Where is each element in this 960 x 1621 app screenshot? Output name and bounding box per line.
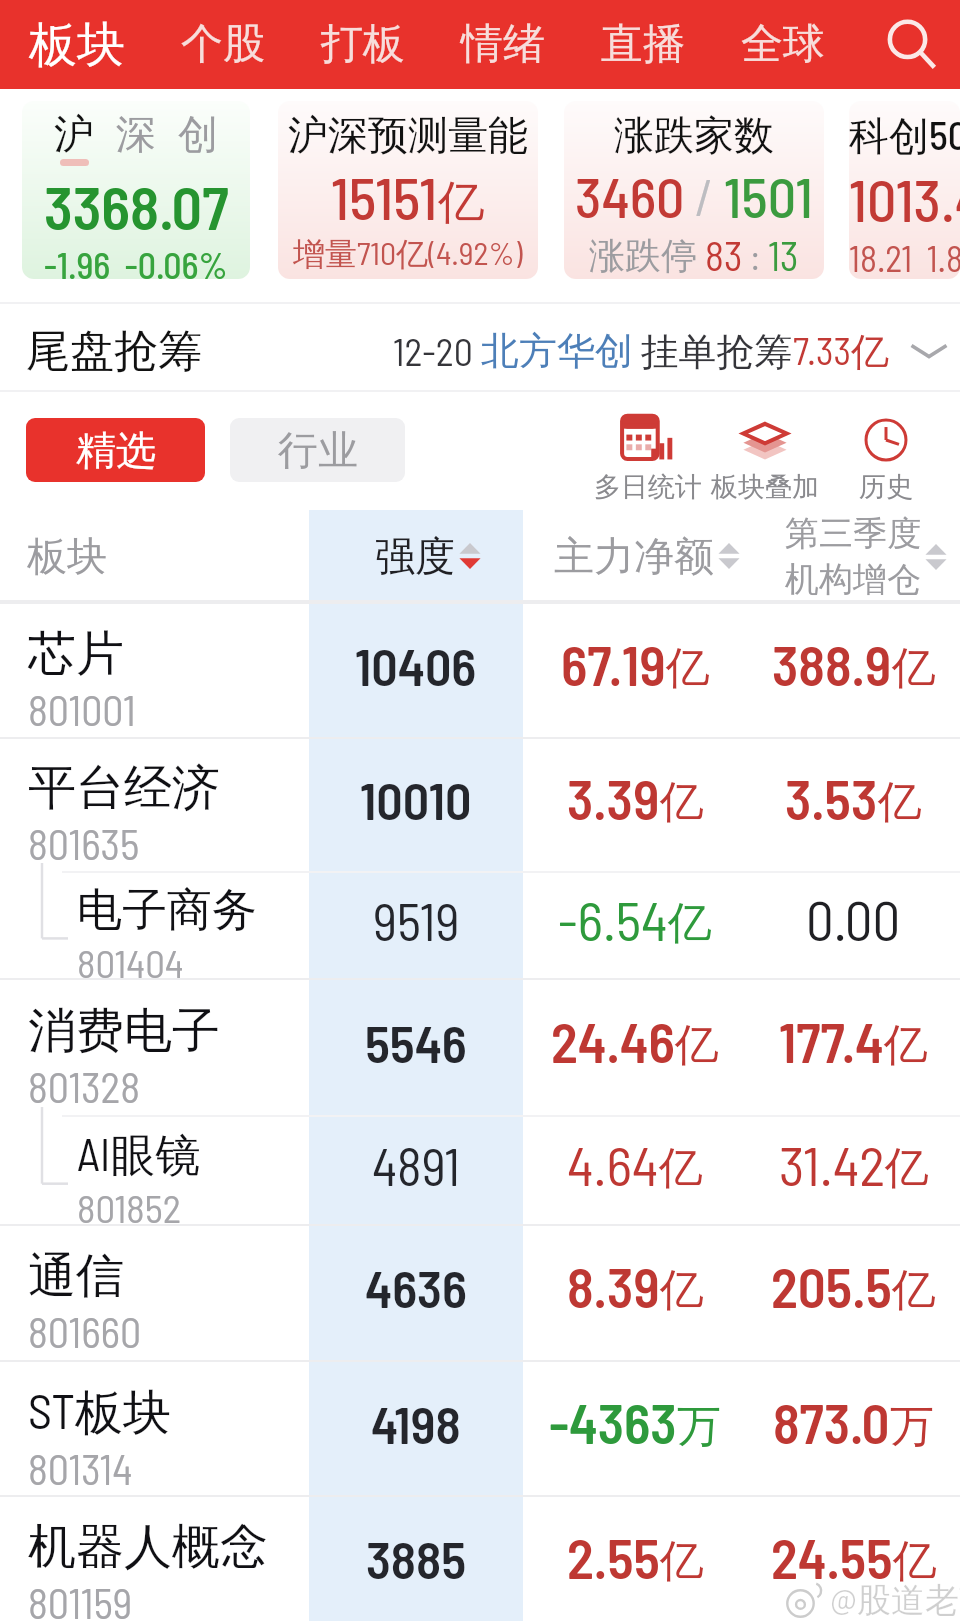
- button[interactable]: 芯片: [0, 602, 960, 737]
- button[interactable]: 板块叠加: [705, 413, 825, 504]
- staticText: 挂单抢筹: [633, 327, 793, 376]
- staticText: @股道老苏: [830, 1578, 960, 1621]
- button[interactable]: 沪: [22, 101, 250, 279]
- staticText: 801635: [28, 818, 140, 868]
- staticText: 第三季度: [785, 512, 921, 555]
- staticText: 精选: [76, 425, 156, 475]
- staticText: 沪: [54, 109, 94, 159]
- staticText: 亿: [893, 1534, 937, 1589]
- button[interactable]: 尾盘抢筹: [0, 308, 960, 394]
- staticText: 创: [178, 109, 218, 159]
- staticText: 亿: [892, 641, 936, 696]
- button[interactable]: 通信: [0, 1224, 960, 1360]
- staticText: 增量710亿(4.92%): [293, 233, 523, 275]
- staticText: 873.0: [773, 1389, 890, 1455]
- button[interactable]: 主力净额: [523, 510, 747, 602]
- staticText: 10406: [355, 634, 477, 696]
- button[interactable]: Expand: [906, 328, 952, 374]
- staticText: 177.4: [779, 1008, 884, 1074]
- staticText: 亿: [878, 775, 922, 830]
- staticText: 全球: [741, 18, 825, 71]
- staticText: 801852: [77, 1184, 182, 1231]
- staticText: 主力净额: [554, 531, 714, 581]
- button[interactable]: 历史: [826, 413, 946, 504]
- staticText: 亿: [666, 641, 710, 696]
- staticText: 5546: [365, 1011, 467, 1073]
- staticText: 平台经济: [28, 758, 220, 818]
- staticText: 涨跌停: [589, 232, 705, 279]
- staticText: 万: [677, 1399, 721, 1454]
- button[interactable]: 全球: [713, 0, 853, 89]
- button[interactable]: 沪深预测量能: [278, 101, 538, 279]
- button[interactable]: 消费电子: [0, 978, 960, 1115]
- staticText: 消费电子: [28, 1001, 220, 1061]
- staticText: 83: [705, 231, 743, 279]
- button[interactable]: 机器人概念: [0, 1495, 960, 1621]
- button[interactable]: 行业: [230, 418, 405, 482]
- staticText: 3.39: [567, 765, 660, 831]
- staticText: 24.55: [771, 1524, 893, 1590]
- staticText: 深: [116, 109, 156, 159]
- staticText: 12-20: [393, 328, 481, 374]
- button[interactable]: 板块: [0, 0, 153, 89]
- staticText: 机构增仓: [785, 558, 921, 601]
- staticText: 亿: [668, 896, 712, 951]
- staticText: 7.33亿: [793, 327, 890, 376]
- staticText: :: [743, 234, 768, 277]
- staticText: 13: [768, 231, 799, 279]
- staticText: 亿: [660, 1534, 704, 1589]
- staticText: 亿: [659, 1141, 703, 1196]
- button[interactable]: 涨跌家数: [564, 101, 824, 279]
- staticText: 1013.44: [849, 164, 960, 234]
- staticText: 板块叠加: [711, 470, 819, 504]
- button[interactable]: ST板块: [0, 1360, 960, 1495]
- staticText: 北方华创: [481, 327, 633, 375]
- staticText: 通信: [28, 1246, 124, 1306]
- staticText: 亿: [884, 1018, 928, 1073]
- staticText: 24.46: [551, 1008, 675, 1074]
- button[interactable]: 精选: [26, 418, 205, 482]
- staticText: 801328: [28, 1061, 141, 1111]
- button[interactable]: AI眼镜: [0, 1115, 960, 1224]
- button[interactable]: 平台经济: [0, 737, 960, 871]
- staticText: /: [685, 166, 724, 226]
- button[interactable]: 强度: [309, 510, 523, 602]
- staticText: 历史: [859, 470, 913, 504]
- staticText: 4891: [372, 1134, 460, 1196]
- staticText: 强度: [375, 531, 455, 581]
- staticText: 801314: [28, 1443, 133, 1493]
- staticText: 801660: [28, 1306, 142, 1356]
- button[interactable]: Search: [864, 0, 960, 89]
- button[interactable]: 情绪: [433, 0, 573, 89]
- staticText: 情绪: [461, 18, 545, 71]
- staticText: 801404: [77, 939, 184, 986]
- staticText: 个股: [181, 18, 265, 71]
- staticText: 行业: [278, 425, 358, 475]
- staticText: 板块: [29, 15, 125, 75]
- staticText: 801159: [28, 1577, 133, 1621]
- staticText: 3460: [575, 162, 685, 229]
- staticText: 18.21 1.83%: [849, 236, 960, 279]
- button[interactable]: 科创50: [849, 101, 960, 279]
- staticText: 31.42: [779, 1131, 885, 1197]
- staticText: 沪深预测量能: [288, 110, 528, 160]
- button[interactable]: 电子商务: [0, 871, 960, 978]
- staticText: 亿: [438, 173, 485, 231]
- staticText: 科创50: [849, 110, 960, 162]
- button[interactable]: 直播: [573, 0, 713, 89]
- staticText: 2.55: [567, 1524, 660, 1590]
- staticText: 15151: [331, 162, 438, 232]
- staticText: 3885: [366, 1527, 467, 1589]
- button[interactable]: 个股: [153, 0, 293, 89]
- staticText: 205.5: [771, 1253, 892, 1319]
- staticText: 67.19: [561, 631, 666, 697]
- staticText: 亿: [660, 1263, 704, 1318]
- button[interactable]: 多日统计: [588, 413, 708, 504]
- button[interactable]: 第三季度: [747, 510, 960, 602]
- staticText: 801001: [28, 684, 136, 734]
- button[interactable]: 打板: [293, 0, 433, 89]
- staticText: 3368.07: [44, 170, 229, 242]
- staticText: 388.9: [772, 631, 892, 697]
- staticText: 板块: [27, 531, 107, 581]
- staticText: 8.39: [567, 1253, 660, 1319]
